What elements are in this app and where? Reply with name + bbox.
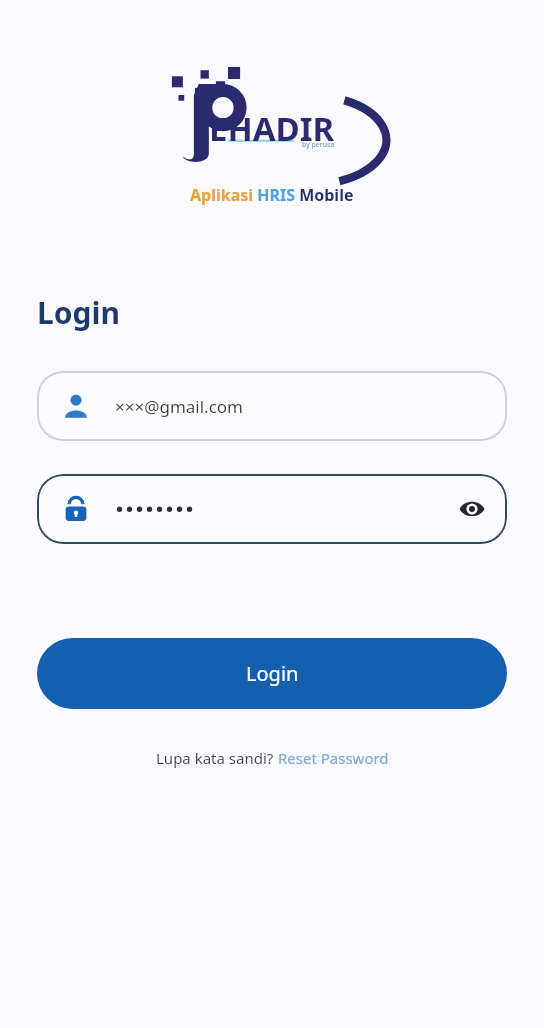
button[interactable]: Show password	[449, 486, 495, 532]
staticText: Reset Password	[278, 748, 389, 768]
button[interactable]: Lupa kata sandi?	[148, 744, 397, 772]
staticText: ×××@gmail.com	[115, 395, 244, 418]
staticText: Login	[246, 660, 299, 687]
staticText: Login	[37, 292, 120, 333]
staticText: by perusa	[302, 140, 335, 150]
button[interactable]: Show password	[37, 474, 507, 544]
staticText: Lupa kata sandi?	[156, 748, 278, 768]
button[interactable]: ×××@gmail.com	[37, 371, 507, 441]
button[interactable]: Login	[37, 638, 507, 709]
staticText: Aplikasi HRIS Mobile	[190, 184, 354, 206]
staticText: EHADIR	[209, 106, 335, 151]
